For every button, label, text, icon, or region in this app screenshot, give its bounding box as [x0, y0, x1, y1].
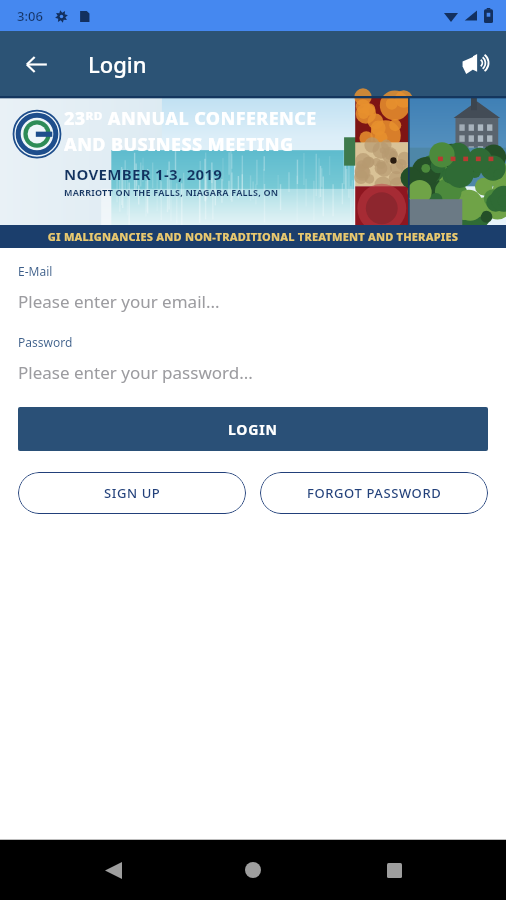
button[interactable]: Please enter your email...	[18, 288, 488, 314]
button[interactable]: Back	[12, 40, 60, 88]
button[interactable]: Please enter your password...	[18, 359, 488, 385]
button[interactable]: Announcements	[450, 40, 498, 88]
staticText: LOGIN	[228, 420, 278, 439]
staticText: NOVEMBER 1-3, 2019	[64, 164, 223, 184]
button[interactable]: FORGOT PASSWORD	[260, 472, 488, 514]
button[interactable]: LOGIN	[18, 407, 488, 451]
button[interactable]: Back	[85, 842, 141, 898]
staticText: Please enter your password...	[18, 361, 253, 384]
button[interactable]: Recents	[366, 842, 422, 898]
staticText: Password	[18, 334, 73, 350]
staticText: SIGN UP	[104, 484, 161, 502]
staticText: AND BUSINESS MEETING	[64, 132, 294, 157]
staticText: 23ᴿᴰ ANNUAL CONFERENCE	[64, 106, 317, 131]
staticText: Please enter your email...	[18, 290, 220, 313]
staticText: FORGOT PASSWORD	[307, 484, 442, 502]
staticText: Login	[88, 49, 147, 79]
staticText: 3:06	[17, 7, 43, 25]
staticText: E-Mail	[18, 263, 53, 279]
staticText: GI MALIGNANCIES AND NON-TRADITIONAL TREA…	[0, 229, 506, 244]
button[interactable]: SIGN UP	[18, 472, 246, 514]
button[interactable]: Home	[225, 842, 281, 898]
staticText: MARRIOTT ON THE FALLS, NIAGARA FALLS, ON	[64, 186, 279, 198]
